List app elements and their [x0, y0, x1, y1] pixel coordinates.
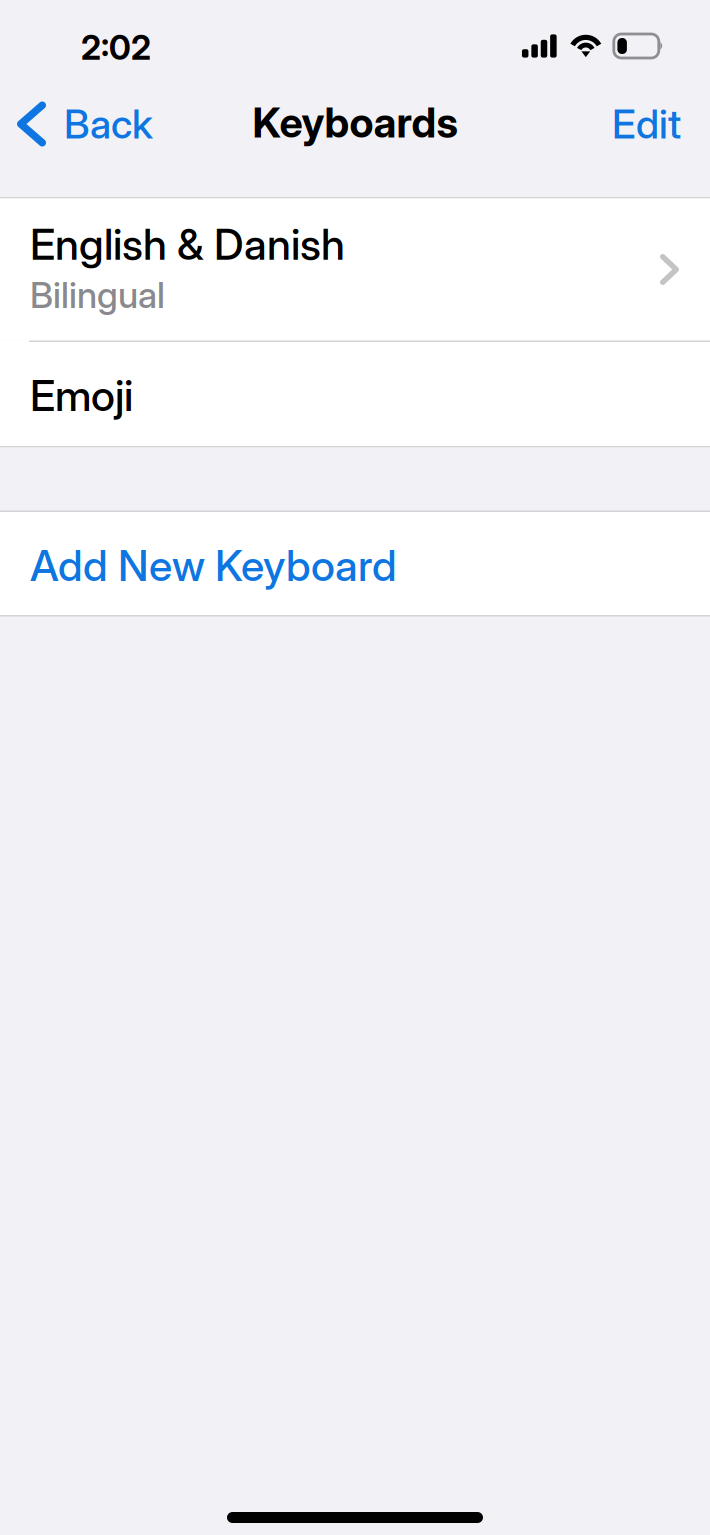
staticText: Add New Keyboard	[30, 540, 397, 591]
staticText: Keyboards	[252, 97, 457, 147]
staticText: Edit	[612, 100, 681, 148]
staticText: Emoji	[30, 370, 133, 421]
staticText: Back	[64, 100, 153, 148]
staticText: Bilingual	[30, 273, 165, 317]
button[interactable]: Edit	[588, 92, 710, 156]
staticText: English & Danish	[30, 218, 345, 270]
button[interactable]: Back	[0, 92, 167, 156]
button[interactable]: Add New Keyboard	[0, 512, 710, 615]
button[interactable]: Emoji	[0, 342, 710, 446]
staticText: 2:02	[81, 27, 151, 68]
button[interactable]: English & Danish	[0, 198, 710, 340]
